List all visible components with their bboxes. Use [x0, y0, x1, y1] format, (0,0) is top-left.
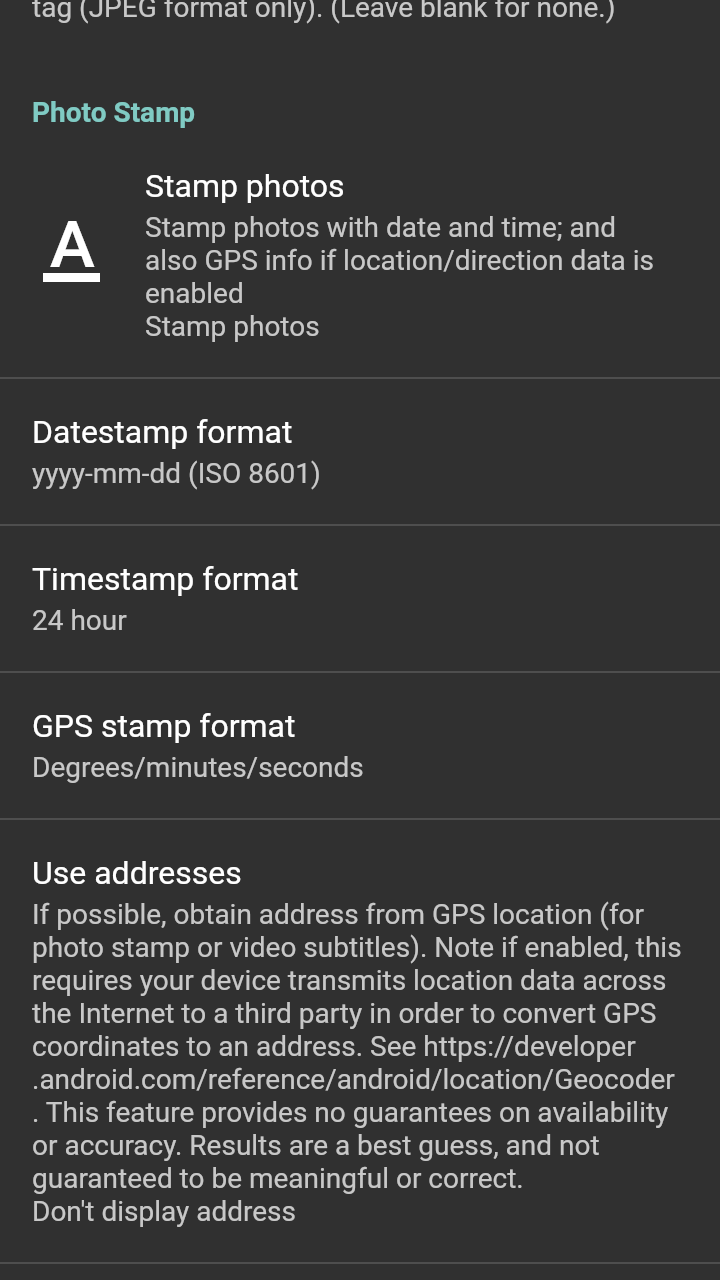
staticText: Stamp photos [145, 167, 345, 205]
button[interactable]: GPS stamp format [0, 673, 720, 818]
staticText: Use addresses [32, 854, 242, 892]
staticText: tag (JPEG format only). (Leave blank for… [32, 0, 616, 24]
staticText: Degrees/minutes/seconds [32, 751, 364, 784]
staticText: If possible, obtain address from GPS loc… [32, 898, 682, 1228]
button[interactable]: Text format [0, 131, 720, 377]
staticText: Stamp photos with date and time; and als… [145, 211, 655, 343]
staticText: Datestamp format [32, 413, 293, 451]
other: Text format [43, 208, 100, 282]
staticText: GPS stamp format [32, 707, 296, 745]
button[interactable]: Datestamp format [0, 379, 720, 524]
button[interactable]: Timestamp format [0, 526, 720, 671]
staticText: Photo Stamp [32, 96, 196, 129]
staticText: Timestamp format [32, 560, 299, 598]
button[interactable]: Use addresses [0, 820, 720, 1262]
staticText: yyyy-mm-dd (ISO 8601) [32, 457, 321, 490]
staticText: 24 hour [32, 604, 127, 637]
staticText: A [50, 208, 95, 282]
